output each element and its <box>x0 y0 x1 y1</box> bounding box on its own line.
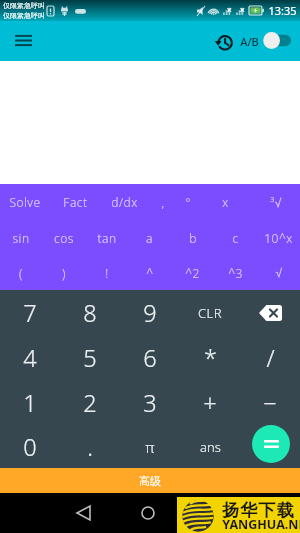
button[interactable]: A/B toggle <box>263 32 291 49</box>
staticText: ° <box>185 194 191 210</box>
button[interactable]: π <box>120 425 180 468</box>
staticText: 3 <box>143 387 157 419</box>
staticText: 5 <box>83 342 97 374</box>
button[interactable]: 1 <box>0 380 60 425</box>
button[interactable]: * <box>180 335 240 380</box>
button[interactable]: 0 <box>0 425 60 468</box>
button[interactable]: ! <box>85 255 128 290</box>
button[interactable]: Backspace <box>240 290 300 335</box>
staticText: c <box>232 230 239 246</box>
staticText: 仅限紧急呼叫 <box>3 11 45 20</box>
button[interactable]: ^3 <box>214 255 257 290</box>
button[interactable]: − <box>240 380 300 425</box>
staticText: ) <box>62 265 66 281</box>
button[interactable]: b <box>171 220 214 255</box>
staticText: YANGHUA.NET <box>222 516 300 533</box>
staticText: CLR <box>198 304 222 322</box>
staticText: * <box>204 342 217 374</box>
button[interactable]: ° <box>176 184 199 220</box>
staticText: b <box>189 230 197 246</box>
button[interactable]: Backspace <box>259 305 282 321</box>
staticText: / <box>266 342 275 374</box>
staticText: Solve <box>9 194 41 210</box>
button[interactable]: History <box>211 29 237 55</box>
button[interactable]: 高级 <box>0 468 300 493</box>
staticText: a <box>146 230 153 246</box>
staticText: d/dx <box>111 194 138 210</box>
button[interactable]: 2 <box>60 380 120 425</box>
button[interactable]: , <box>149 184 176 220</box>
staticText: , <box>161 194 165 210</box>
button[interactable]: Menu <box>9 26 37 54</box>
button[interactable]: Back <box>71 501 95 525</box>
button[interactable]: x <box>199 184 252 220</box>
staticText: 13:35 <box>268 3 297 18</box>
button[interactable]: 4 <box>0 335 60 380</box>
button[interactable]: d/dx <box>100 184 149 220</box>
button[interactable] <box>240 425 300 468</box>
button[interactable]: Fact <box>50 184 100 220</box>
button[interactable]: 10^x <box>257 220 300 255</box>
button[interactable]: Home <box>136 501 160 525</box>
staticText: ( <box>19 265 23 281</box>
staticText: 4 <box>23 342 37 374</box>
staticText: A/B <box>240 34 259 48</box>
button[interactable]: ³√ <box>252 184 300 220</box>
button[interactable]: ( <box>0 255 42 290</box>
staticText: 6 <box>143 342 157 374</box>
staticText: 10^x <box>264 230 293 246</box>
staticText: sin <box>12 230 30 246</box>
button[interactable]: 6 <box>120 335 180 380</box>
staticText: ! <box>105 265 109 281</box>
staticText: 9 <box>143 297 157 329</box>
button[interactable]: 9 <box>120 290 180 335</box>
button[interactable]: tan <box>85 220 128 255</box>
staticText: + <box>203 387 217 419</box>
button[interactable]: a <box>128 220 171 255</box>
button[interactable]: ) <box>42 255 85 290</box>
staticText: cos <box>54 230 74 246</box>
staticText: 高级 <box>139 474 161 488</box>
button[interactable]: Solve <box>0 184 50 220</box>
staticText: Fact <box>63 194 88 210</box>
staticText: 仅限紧急呼叫 <box>3 1 45 10</box>
button[interactable]: sin <box>0 220 42 255</box>
button[interactable]: ^2 <box>171 255 214 290</box>
staticText: √ <box>275 266 283 279</box>
staticText: − <box>263 387 277 419</box>
staticText: ans <box>200 438 221 456</box>
staticText: 0 <box>23 431 37 463</box>
staticText: ^2 <box>185 265 200 281</box>
staticText: 2 <box>83 387 97 419</box>
staticText: 8 <box>83 297 97 329</box>
button[interactable]: 8 <box>60 290 120 335</box>
staticText: π <box>145 437 155 457</box>
button[interactable]: / <box>240 335 300 380</box>
staticText: ^3 <box>228 265 243 281</box>
staticText: x <box>222 194 229 210</box>
staticText: ³√ <box>270 194 282 210</box>
button[interactable]: 7 <box>0 290 60 335</box>
button[interactable]: √ <box>257 255 300 290</box>
button[interactable]: + <box>180 380 240 425</box>
staticText: 7 <box>23 297 37 329</box>
button[interactable]: A/B <box>240 34 262 48</box>
button[interactable]: 5 <box>60 335 120 380</box>
button[interactable]: c <box>214 220 257 255</box>
button[interactable]: 3 <box>120 380 180 425</box>
button[interactable]: . <box>60 425 120 468</box>
button[interactable]: Equals <box>252 425 290 463</box>
button[interactable]: cos <box>42 220 85 255</box>
button[interactable]: ans <box>180 425 240 468</box>
staticText: 1 <box>23 387 37 419</box>
staticText: ^ <box>146 265 154 281</box>
staticText: . <box>87 431 93 463</box>
button[interactable]: CLR <box>180 290 240 335</box>
staticText: 扬华下载 <box>222 500 295 521</box>
staticText: tan <box>97 230 117 246</box>
button[interactable]: ^ <box>128 255 171 290</box>
